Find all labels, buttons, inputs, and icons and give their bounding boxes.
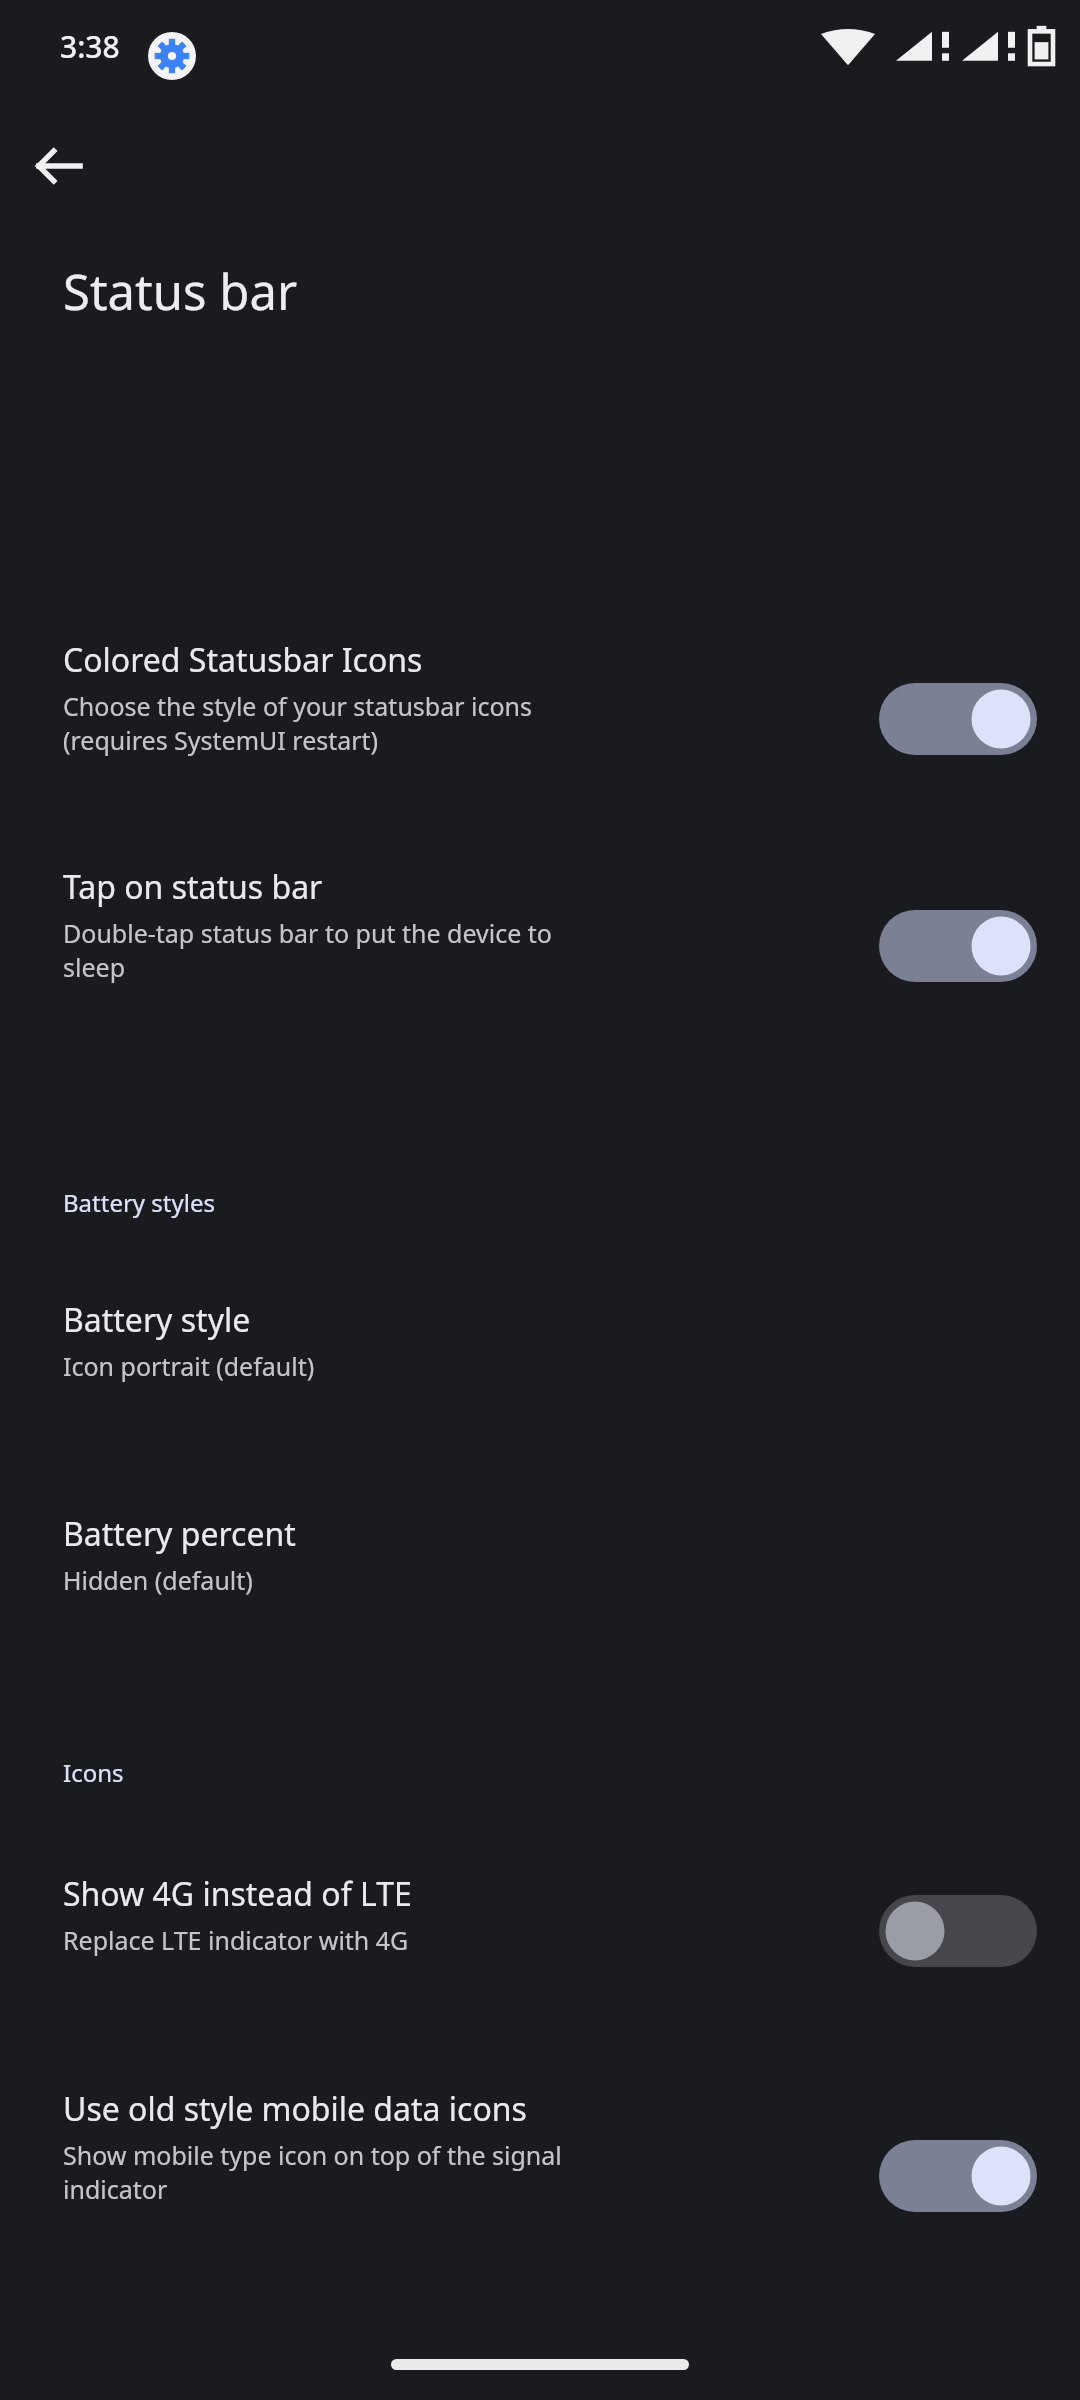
- button[interactable]: Colored Statusbar Icons, on: [858, 659, 1058, 779]
- staticText: Battery style: [63, 1298, 251, 1342]
- button[interactable]: Tap on status bar: [0, 865, 1080, 1065]
- button[interactable]: Tap on status bar, on: [858, 886, 1058, 1006]
- staticText: Show 4G instead of LTE: [63, 1872, 412, 1916]
- staticText: Choose the style of your statusbar icons…: [63, 689, 533, 757]
- button[interactable]: Battery percent: [0, 1512, 1080, 1682]
- staticText: Icon portrait (default): [63, 1349, 315, 1383]
- button[interactable]: Show 4G instead of LTE, off: [858, 1871, 1058, 1991]
- staticText: Battery styles: [63, 1186, 215, 1219]
- button[interactable]: Colored Statusbar Icons: [0, 638, 1080, 838]
- staticText: Replace LTE indicator with 4G: [63, 1923, 409, 1957]
- staticText: Icons: [63, 1756, 124, 1789]
- staticText: 3:38: [60, 26, 120, 67]
- button[interactable]: Use old style mobile data icons, on: [858, 2116, 1058, 2236]
- button[interactable]: Battery style: [0, 1298, 1080, 1468]
- staticText: Tap on status bar: [63, 865, 323, 909]
- staticText: Double-tap status bar to put the device …: [63, 916, 552, 984]
- staticText: Hidden (default): [63, 1563, 253, 1597]
- staticText: Colored Statusbar Icons: [63, 638, 423, 682]
- button[interactable]: Show 4G instead of LTE: [0, 1872, 1080, 2040]
- staticText: Battery percent: [63, 1512, 296, 1556]
- staticText: Status bar: [63, 258, 298, 325]
- button[interactable]: Back: [24, 131, 94, 201]
- staticText: Show mobile type icon on top of the sign…: [63, 2138, 562, 2206]
- button[interactable]: Use old style mobile data icons: [0, 2087, 1080, 2287]
- staticText: Use old style mobile data icons: [63, 2087, 527, 2131]
